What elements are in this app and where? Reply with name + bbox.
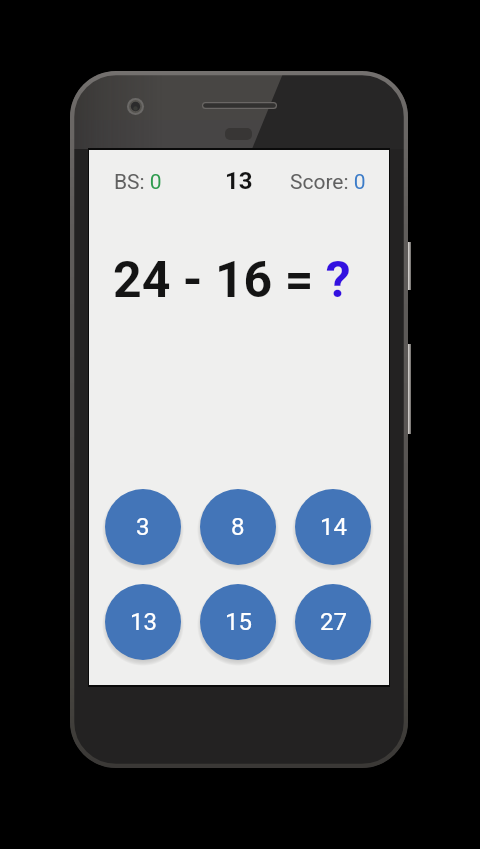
button[interactable]: 13 [105, 584, 181, 660]
staticText: 27 [320, 608, 347, 636]
button[interactable]: 15 [200, 584, 276, 660]
button[interactable]: 3 [105, 489, 181, 565]
staticText: 15 [225, 608, 252, 636]
staticText: 13 [130, 608, 157, 636]
button[interactable]: 14 [295, 489, 371, 565]
staticText: Score: 0 [290, 170, 366, 195]
staticText: 14 [320, 513, 347, 541]
staticText: BS: 0 [114, 170, 162, 195]
button[interactable]: 27 [295, 584, 371, 660]
staticText: 13 [225, 167, 253, 195]
button[interactable]: 8 [200, 489, 276, 565]
staticText: 24 - 16 = ? [113, 251, 351, 310]
staticText: 3 [136, 513, 150, 541]
staticText: 8 [231, 513, 245, 541]
